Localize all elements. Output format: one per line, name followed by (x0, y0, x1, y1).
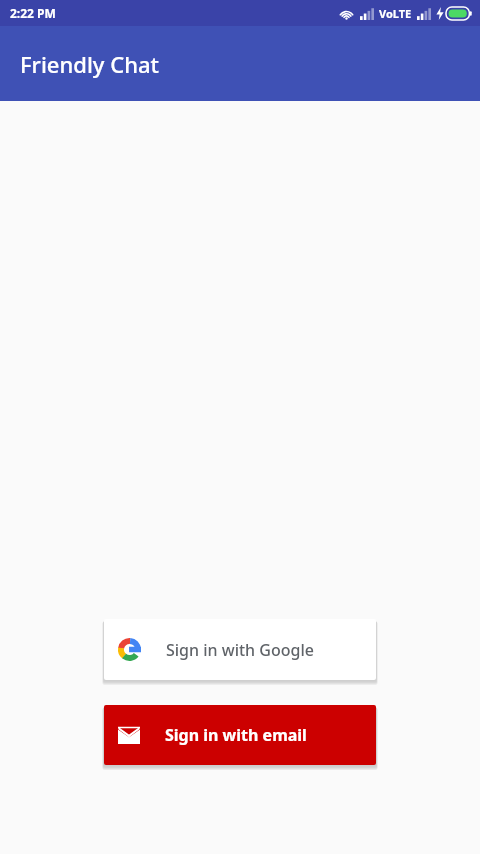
other: Email (118, 727, 140, 744)
staticText: Sign in with Google (166, 639, 314, 661)
staticText: Friendly Chat (20, 49, 159, 79)
button[interactable]: Sign in with Google (104, 619, 376, 680)
staticText: Sign in with email (165, 724, 307, 746)
button[interactable]: Email (104, 705, 376, 765)
staticText: VoLTE (379, 6, 412, 21)
staticText: 2:22 PM (10, 5, 56, 21)
